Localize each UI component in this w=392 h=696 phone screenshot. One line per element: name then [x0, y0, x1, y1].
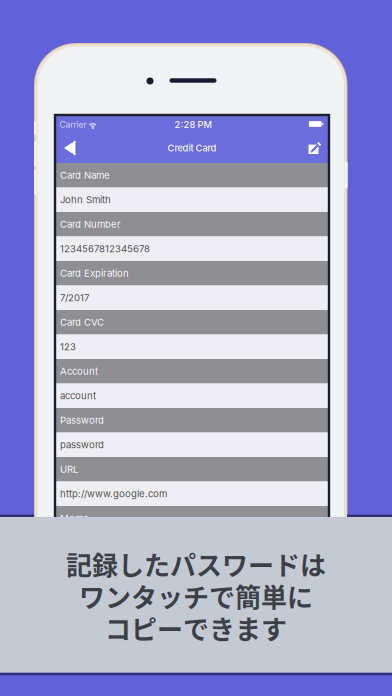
staticText: account [60, 390, 96, 401]
button[interactable]: Back [55, 133, 85, 163]
staticText: Card Number [60, 218, 121, 230]
staticText: 7/2017 [60, 292, 89, 303]
staticText: 123 [60, 341, 76, 352]
staticText: Card Name [60, 169, 110, 181]
staticText: Card Expiration [60, 267, 129, 279]
staticText: Account [60, 365, 98, 377]
button[interactable]: Edit [300, 133, 330, 163]
staticText: 2:28 PM [174, 119, 212, 130]
staticText: Carrier [60, 119, 87, 130]
staticText: ワンタッチで簡単に [79, 577, 313, 615]
staticText: 1234567812345678 [60, 243, 150, 254]
staticText: John Smith [60, 194, 111, 205]
staticText: 記録したパスワードは [66, 545, 326, 583]
staticText: Credit Card [167, 142, 216, 154]
staticText: コピーできます [105, 609, 287, 647]
staticText: URL [60, 463, 78, 475]
staticText: Password [60, 414, 104, 426]
staticText: password [60, 439, 104, 450]
staticText: Memo [60, 512, 89, 524]
staticText: Card CVC [60, 316, 104, 328]
staticText: http://www.google.com [60, 488, 167, 499]
